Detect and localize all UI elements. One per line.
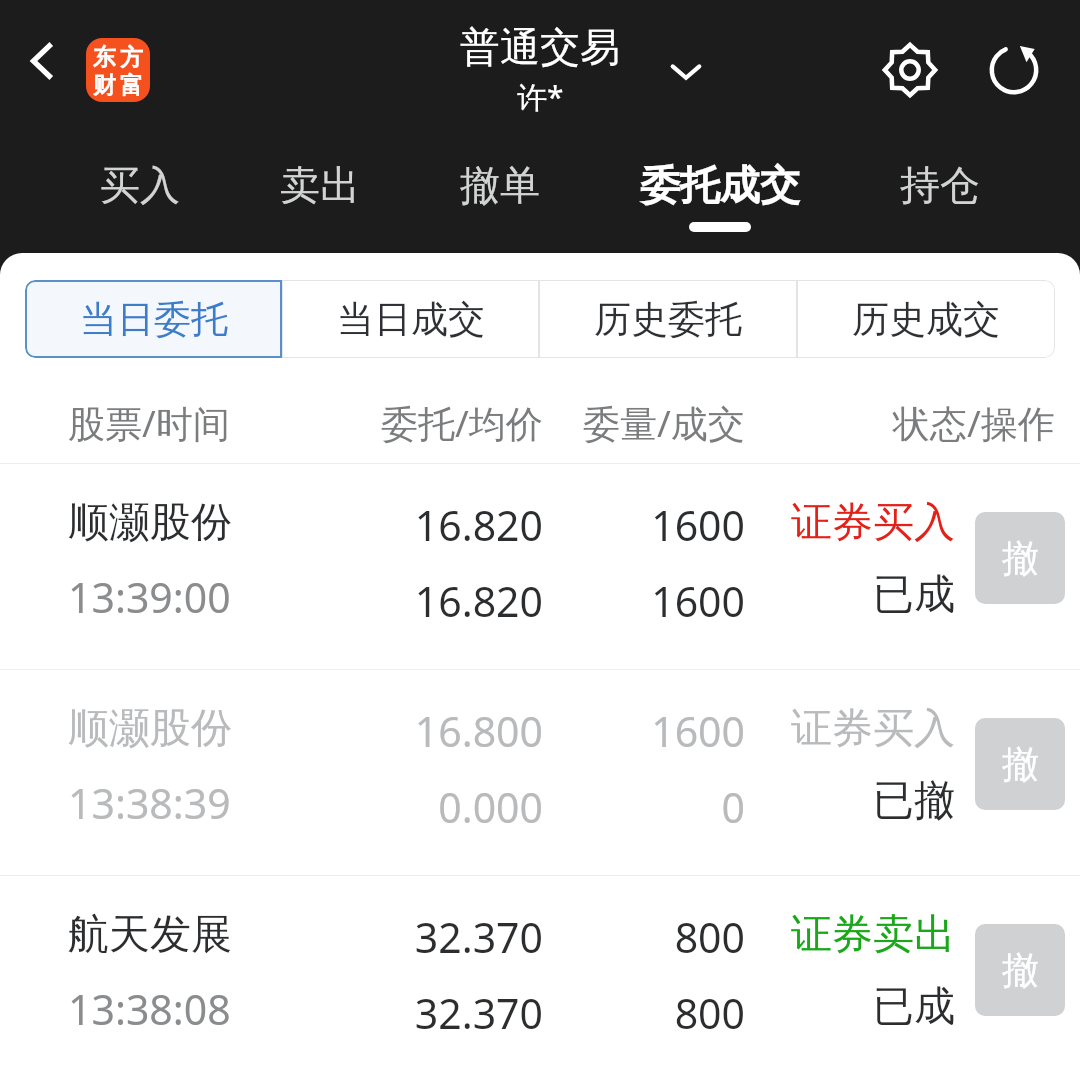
button[interactable]: 持仓 (900, 140, 980, 253)
staticText: 股票/时间 (68, 397, 230, 448)
staticText: 0 (721, 779, 745, 835)
button[interactable]: Refresh (976, 32, 1052, 108)
staticText: 财 (93, 71, 116, 98)
staticText: 历史成交 (852, 296, 1000, 343)
staticText: 证券买入 (791, 497, 955, 549)
button[interactable]: 航天发展 (0, 876, 1080, 1081)
button[interactable]: 顺灏股份 (0, 464, 1080, 669)
staticText: 方 (120, 43, 143, 70)
staticText: 证券卖出 (791, 909, 955, 961)
button[interactable]: 买入 (100, 140, 180, 253)
staticText: 委托/均价 (381, 397, 543, 448)
staticText: 16.820 (414, 573, 543, 629)
button[interactable]: 撤单 (460, 140, 540, 253)
staticText: 13:38:39 (68, 775, 231, 831)
button[interactable]: 撤 (975, 512, 1065, 604)
staticText: 13:38:08 (68, 981, 231, 1037)
staticText: 卖出 (280, 160, 360, 210)
staticText: 已成 (873, 569, 955, 621)
staticText: 委托成交 (640, 160, 800, 210)
staticText: 撤 (1002, 535, 1039, 582)
staticText: 已撤 (873, 775, 955, 827)
button[interactable]: 历史成交 (797, 280, 1055, 358)
staticText: 13:39:00 (68, 569, 231, 625)
staticText: 证券买入 (791, 703, 955, 755)
staticText: 1600 (651, 703, 745, 759)
button[interactable]: 撤 (975, 718, 1065, 810)
button[interactable]: 历史委托 (539, 280, 797, 358)
button[interactable]: 东方财富 (86, 38, 150, 102)
staticText: 持仓 (900, 160, 980, 210)
button[interactable]: Settings (872, 32, 948, 108)
button[interactable]: 顺灏股份 (0, 670, 1080, 875)
button[interactable]: 委托成交 (640, 140, 800, 253)
button[interactable]: 卖出 (280, 140, 360, 253)
button[interactable]: Switch account (655, 40, 717, 102)
staticText: 状态/操作 (893, 397, 1055, 448)
button[interactable]: 撤 (975, 924, 1065, 1016)
button[interactable]: Back (8, 26, 78, 96)
staticText: 航天发展 (68, 909, 232, 961)
staticText: 东 (93, 43, 116, 70)
staticText: 委量/成交 (583, 397, 745, 448)
staticText: 0.000 (438, 779, 543, 835)
staticText: 800 (674, 909, 745, 965)
staticText: 顺灏股份 (68, 703, 232, 755)
staticText: 历史委托 (594, 296, 742, 343)
button[interactable]: 当日成交 (282, 280, 539, 358)
staticText: 1600 (651, 497, 745, 553)
staticText: 32.370 (414, 985, 543, 1041)
staticText: 撤 (1002, 741, 1039, 788)
staticText: 许* (517, 76, 564, 117)
staticText: 16.800 (414, 703, 543, 759)
staticText: 撤 (1002, 947, 1039, 994)
staticText: 普通交易 (460, 22, 620, 72)
staticText: 富 (120, 71, 143, 98)
staticText: 买入 (100, 160, 180, 210)
staticText: 1600 (651, 573, 745, 629)
staticText: 32.370 (414, 909, 543, 965)
staticText: 800 (674, 985, 745, 1041)
staticText: 16.820 (414, 497, 543, 553)
staticText: 已成 (873, 981, 955, 1033)
staticText: 当日委托 (80, 296, 228, 343)
staticText: 顺灏股份 (68, 497, 232, 549)
staticText: 撤单 (460, 160, 540, 210)
button[interactable]: 当日委托 (25, 280, 282, 358)
staticText: 当日成交 (337, 296, 485, 343)
